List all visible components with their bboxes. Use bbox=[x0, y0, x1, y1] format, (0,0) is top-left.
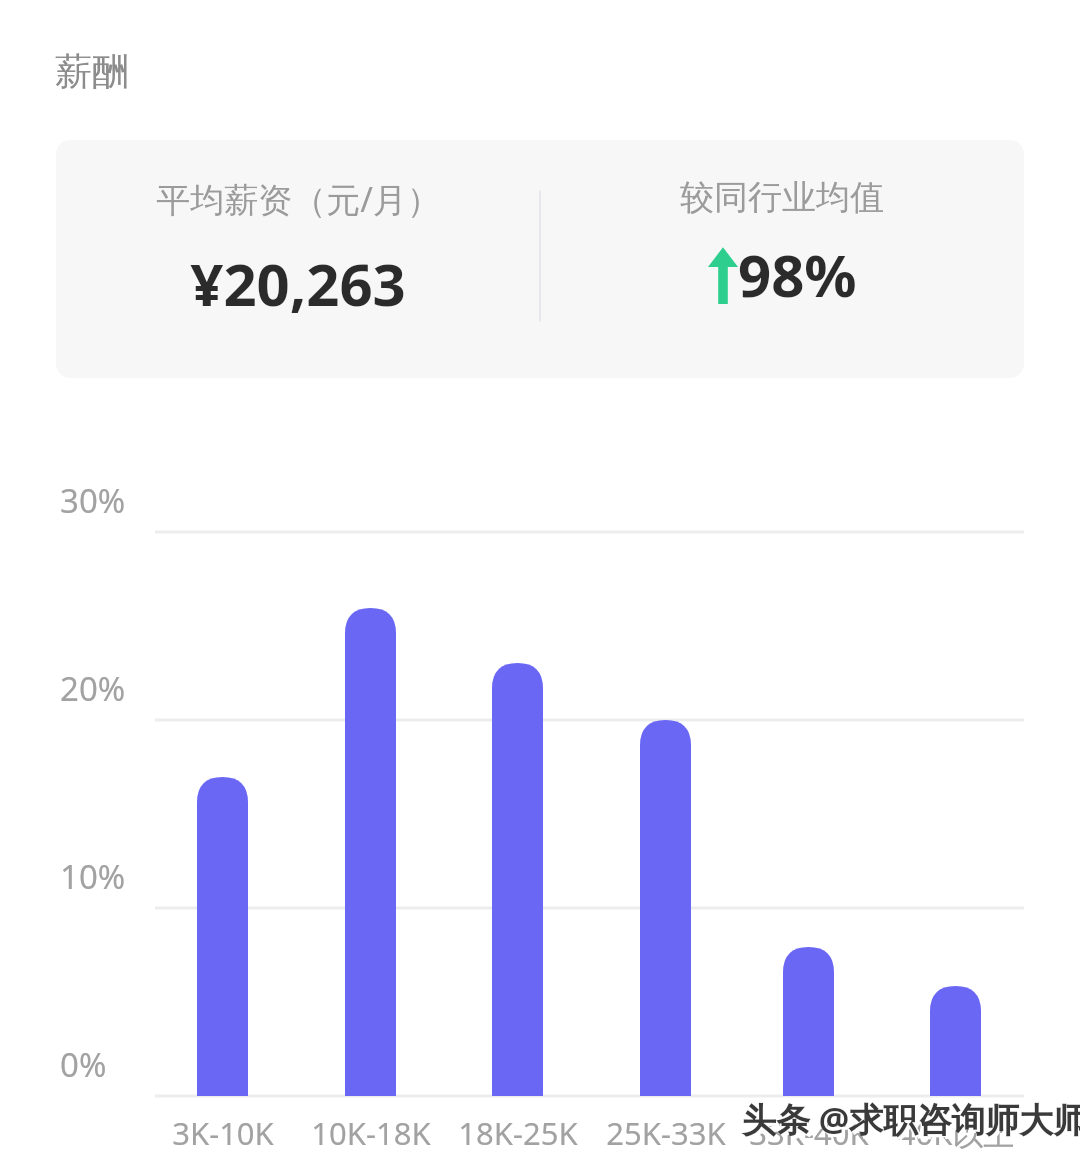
button[interactable]: 平均薪资（元/月） bbox=[56, 140, 1024, 378]
staticText: 30% bbox=[60, 478, 126, 523]
button[interactable]: 10K-18K bbox=[286, 1112, 456, 1154]
staticText: 98% bbox=[738, 235, 857, 314]
other: 上升 bbox=[708, 246, 738, 304]
staticText: ¥20,263 bbox=[190, 244, 406, 323]
staticText: 20% bbox=[60, 666, 126, 711]
button[interactable]: 33K-40K bbox=[724, 1112, 894, 1154]
staticText: 头条 @求职咨询师大师兄 bbox=[745, 1099, 1080, 1145]
staticText: 40K以上 bbox=[871, 1112, 1041, 1154]
button[interactable]: 3K-10K bbox=[138, 1112, 308, 1154]
staticText: 33K-40K bbox=[724, 1112, 894, 1154]
staticText: 较同行业均值 bbox=[680, 176, 884, 219]
staticText: 0% bbox=[60, 1042, 107, 1087]
staticText: 10% bbox=[60, 854, 126, 899]
button[interactable]: 40K以上 bbox=[871, 1112, 1041, 1154]
staticText: 18K-25K bbox=[433, 1112, 603, 1154]
button[interactable]: 25K-33K bbox=[581, 1112, 751, 1154]
staticText: 3K-10K bbox=[138, 1112, 308, 1154]
staticText: 头条 @求职咨询师大师兄 bbox=[742, 1096, 1080, 1142]
staticText: 10K-18K bbox=[286, 1112, 456, 1154]
staticText: 平均薪资（元/月） bbox=[156, 176, 441, 222]
staticText: 25K-33K bbox=[581, 1112, 751, 1154]
button[interactable]: 18K-25K bbox=[433, 1112, 603, 1154]
staticText: 薪酬 bbox=[55, 48, 129, 95]
staticText: 头条 @求职咨询师大师兄 bbox=[739, 1093, 1080, 1139]
